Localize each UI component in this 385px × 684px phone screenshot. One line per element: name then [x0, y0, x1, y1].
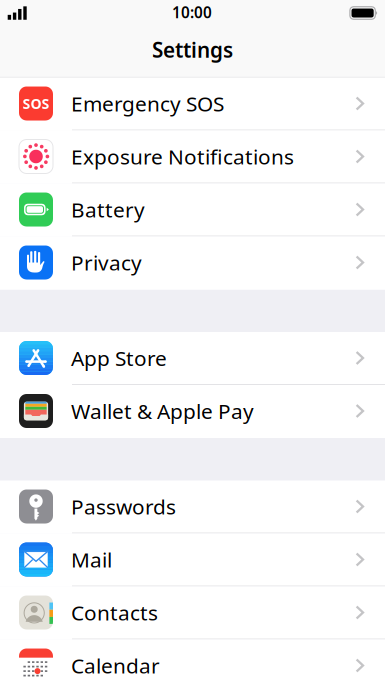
staticText: Contacts	[71, 598, 158, 627]
staticText: 10:00	[172, 2, 212, 23]
button[interactable]: Contacts	[0, 586, 385, 639]
staticText: Exposure Notifications	[71, 142, 294, 171]
button[interactable]: Calendar	[0, 639, 385, 684]
staticText: Emergency SOS	[71, 89, 224, 118]
staticText: SOS	[22, 94, 49, 113]
staticText: Mail	[71, 545, 112, 574]
staticText: Battery	[71, 195, 145, 224]
button[interactable]: Battery	[0, 183, 385, 236]
button[interactable]: Passwords	[0, 480, 385, 533]
staticText: Wallet & Apple Pay	[71, 397, 254, 425]
button[interactable]: SOS	[0, 77, 385, 130]
staticText: Passwords	[71, 492, 176, 521]
staticText: Privacy	[71, 248, 142, 277]
button[interactable]: Wallet & Apple Pay	[0, 385, 385, 438]
button[interactable]: Privacy	[0, 236, 385, 289]
button[interactable]: Exposure Notifications	[0, 130, 385, 183]
staticText: Calendar	[71, 651, 160, 680]
staticText: Settings	[152, 36, 233, 64]
staticText: App Store	[71, 344, 167, 372]
button[interactable]: Mail	[0, 533, 385, 586]
button[interactable]: App Store	[0, 332, 385, 385]
